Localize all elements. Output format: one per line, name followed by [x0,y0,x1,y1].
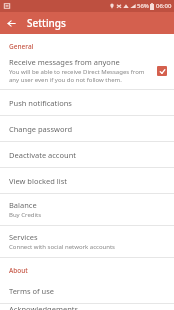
button[interactable]: Acknowledgements [0,304,174,310]
staticText: Terms of use [9,286,55,296]
button[interactable]: Services [0,226,174,257]
button[interactable]: Balance [0,194,174,225]
button[interactable]: Deactivate account [0,142,174,167]
button[interactable]: View blocked list [0,168,174,193]
button[interactable]: Change password [0,116,174,141]
staticText: You will be able to receive Direct Messa… [9,68,151,84]
staticText: Push notifications [9,98,72,108]
button[interactable]: Push notifications [0,90,174,115]
staticText: View blocked list [9,176,68,186]
staticText: Buy Credits [9,211,42,219]
staticText: Settings [27,16,66,30]
button[interactable]: Back [0,12,22,34]
staticText: Connect with social network accounts [9,243,115,251]
button[interactable]: Receive messages from anyone [0,54,174,89]
staticText: Deactivate account [9,150,76,160]
staticText: About [9,266,28,275]
staticText: General [9,42,34,51]
staticText: Change password [9,124,73,134]
staticText: 56% [137,2,149,10]
staticText: Balance [9,200,37,210]
staticText: Services [9,232,38,242]
button[interactable]: Terms of use [0,278,174,303]
staticText: 06:00 [156,2,172,10]
button[interactable]: Receive messages from anyone checkbox [155,64,169,78]
staticText: Receive messages from anyone [9,57,120,67]
staticText: Acknowledgements [9,304,79,310]
